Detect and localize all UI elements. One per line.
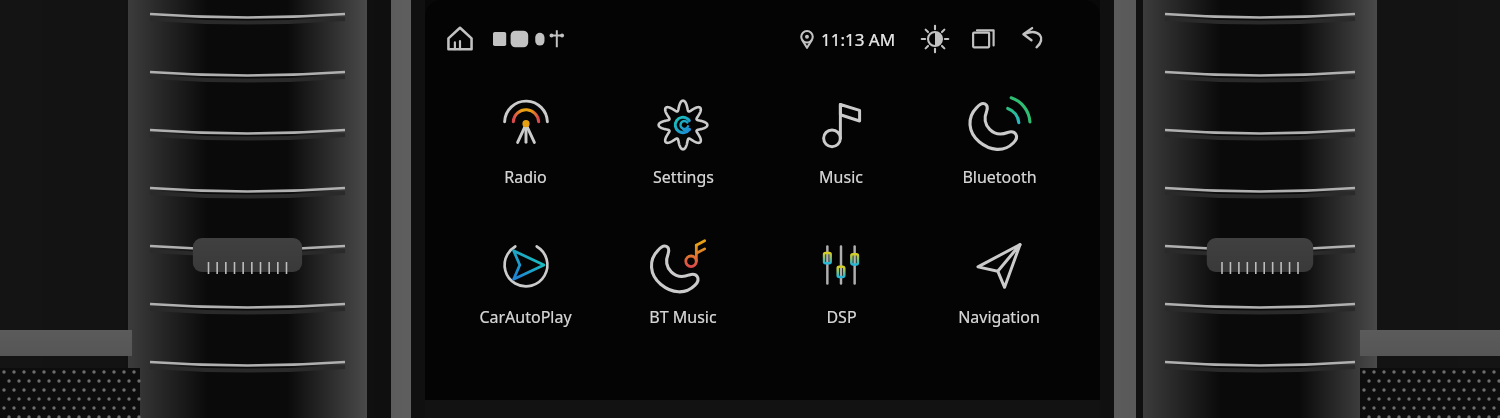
button[interactable]: Music [762, 92, 920, 190]
staticText: Bluetooth [962, 166, 1037, 188]
button[interactable]: Radio [447, 92, 604, 190]
button[interactable]: Recent apps [968, 23, 1000, 55]
button[interactable]: Bluetooth [920, 92, 1078, 190]
button[interactable]: Home [443, 22, 477, 56]
staticText: Radio [504, 166, 547, 188]
staticText: 11:13 AM [821, 28, 896, 51]
button[interactable]: CarAutoPlay [447, 232, 604, 330]
button[interactable]: DSP [762, 232, 920, 330]
button[interactable]: BT Music [604, 232, 762, 330]
staticText: Navigation [958, 306, 1040, 328]
button[interactable]: Settings [604, 92, 762, 190]
staticText: CarAutoPlay [479, 306, 572, 328]
staticText: DSP [826, 306, 857, 328]
staticText: BT Music [649, 306, 717, 328]
staticText: Music [819, 166, 863, 188]
button[interactable]: Navigation [920, 232, 1078, 330]
staticText: Settings [653, 166, 714, 188]
button[interactable]: Back [1018, 23, 1050, 55]
button[interactable]: Brightness [918, 22, 952, 56]
